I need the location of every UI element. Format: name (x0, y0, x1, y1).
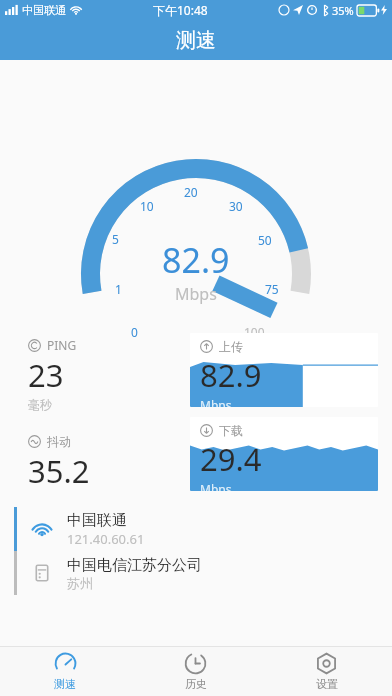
button[interactable]: PING (28, 336, 77, 413)
staticText: 中国电信江苏分公司 (67, 556, 202, 575)
staticText: Mbps (200, 397, 232, 407)
staticText: 毫秒 (28, 397, 52, 412)
staticText: 上传 (219, 339, 243, 354)
button[interactable]: 下载 (190, 417, 378, 491)
staticText: 10 (140, 198, 154, 214)
staticText: 82.9 (162, 237, 230, 283)
staticText: 30 (229, 198, 243, 214)
staticText: 5 (112, 231, 119, 247)
staticText: 下载 (219, 423, 243, 438)
button[interactable]: 设置 (261, 647, 392, 696)
staticText: 50 (258, 232, 272, 248)
staticText: 82.9 (200, 354, 262, 396)
staticText: 抖动 (47, 434, 71, 449)
staticText: 历史 (185, 677, 207, 691)
staticText: 121.40.60.61 (67, 530, 145, 548)
button[interactable]: 上传 (190, 333, 378, 407)
button[interactable]: 中国电信江苏分公司 (14, 551, 378, 595)
staticText: 苏州 (67, 575, 93, 591)
staticText: 中国联通 (22, 3, 66, 17)
staticText: 35.2 (28, 450, 90, 492)
staticText: PING (47, 337, 77, 353)
staticText: 29.4 (200, 438, 262, 480)
staticText: 23 (28, 354, 64, 396)
button[interactable]: 中国联通 (14, 507, 378, 551)
staticText: 设置 (316, 677, 338, 691)
staticText: Mbps (200, 481, 232, 491)
staticText: 1 (115, 281, 122, 297)
staticText: 20 (184, 184, 198, 200)
staticText: 35% (332, 3, 354, 18)
staticText: 75 (265, 281, 279, 297)
staticText: 0 (131, 324, 138, 340)
staticText: 下午10:48 (153, 2, 208, 18)
staticText: 100 (244, 324, 265, 340)
staticText: 测速 (176, 28, 216, 53)
button[interactable]: 测速 (0, 647, 130, 696)
button[interactable]: 历史 (130, 647, 261, 696)
staticText: Mbps (175, 283, 217, 305)
staticText: 中国联通 (67, 511, 127, 530)
button[interactable]: 抖动 (28, 433, 90, 493)
staticText: 测速 (54, 677, 76, 691)
